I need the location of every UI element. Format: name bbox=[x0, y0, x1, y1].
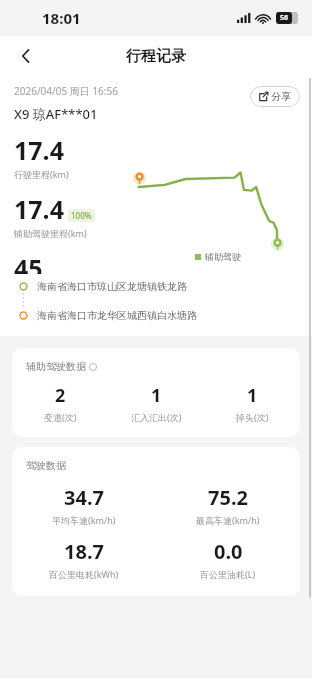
staticText: 100% bbox=[71, 210, 92, 221]
staticText: 1 bbox=[151, 383, 162, 408]
staticText: 百公里油耗(L) bbox=[200, 568, 256, 580]
staticText: 平均车速(km/h) bbox=[52, 514, 116, 526]
staticText: 百公里电耗(kWh) bbox=[49, 568, 119, 580]
button[interactable]: Back bbox=[8, 38, 44, 74]
staticText: 17.4 bbox=[14, 133, 64, 167]
staticText: 75.2 bbox=[208, 484, 248, 511]
staticText: 2026/04/05 周日 16:56 bbox=[14, 84, 118, 98]
staticText: 辅助驾驶里程(km) bbox=[14, 227, 87, 239]
staticText: 分享 bbox=[271, 90, 291, 103]
staticText: 掉头(次) bbox=[236, 411, 269, 423]
staticText: 56 bbox=[280, 13, 289, 23]
staticText: 1 bbox=[247, 383, 258, 408]
staticText: 2 bbox=[55, 383, 66, 408]
staticText: 辅助驾驶 bbox=[205, 251, 241, 262]
staticText: X9 琼AF***01 bbox=[14, 105, 98, 123]
staticText: 18:01 bbox=[42, 8, 81, 28]
staticText: 海南省海口市琼山区龙塘镇铁龙路 bbox=[37, 280, 187, 293]
staticText: 驾驶数据 bbox=[26, 459, 66, 472]
staticText: 34.7 bbox=[64, 484, 104, 511]
staticText: 18.7 bbox=[64, 538, 104, 565]
staticText: 海南省海口市龙华区城西镇白水塘路 bbox=[37, 309, 197, 322]
staticText: 行驶里程(km) bbox=[14, 168, 69, 180]
staticText: 17.4 bbox=[14, 192, 64, 226]
staticText: 汇入汇出(次) bbox=[131, 411, 182, 423]
button[interactable]: 分享 bbox=[250, 86, 300, 107]
staticText: 行程记录 bbox=[126, 47, 186, 66]
staticText: 最高车速(km/h) bbox=[196, 514, 260, 526]
button[interactable]: 驾驶数据 bbox=[12, 447, 300, 596]
button[interactable]: 辅助驾驶数据 bbox=[12, 348, 300, 437]
staticText: 辅助驾驶数据 bbox=[26, 360, 86, 373]
staticText: 变道(次) bbox=[44, 411, 77, 423]
staticText: 45 bbox=[14, 251, 43, 274]
staticText: 0.0 bbox=[214, 538, 243, 565]
